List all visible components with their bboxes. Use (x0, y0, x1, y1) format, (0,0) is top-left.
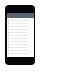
button[interactable] (7, 22, 34, 25)
button[interactable] (7, 49, 34, 52)
button[interactable] (7, 31, 34, 34)
button[interactable] (7, 46, 34, 49)
button[interactable] (7, 43, 34, 46)
button[interactable] (7, 37, 34, 40)
button[interactable] (7, 19, 34, 22)
button[interactable] (7, 25, 34, 28)
button[interactable] (7, 52, 34, 55)
button[interactable] (7, 40, 34, 43)
button[interactable] (7, 34, 34, 37)
button[interactable] (7, 28, 34, 31)
